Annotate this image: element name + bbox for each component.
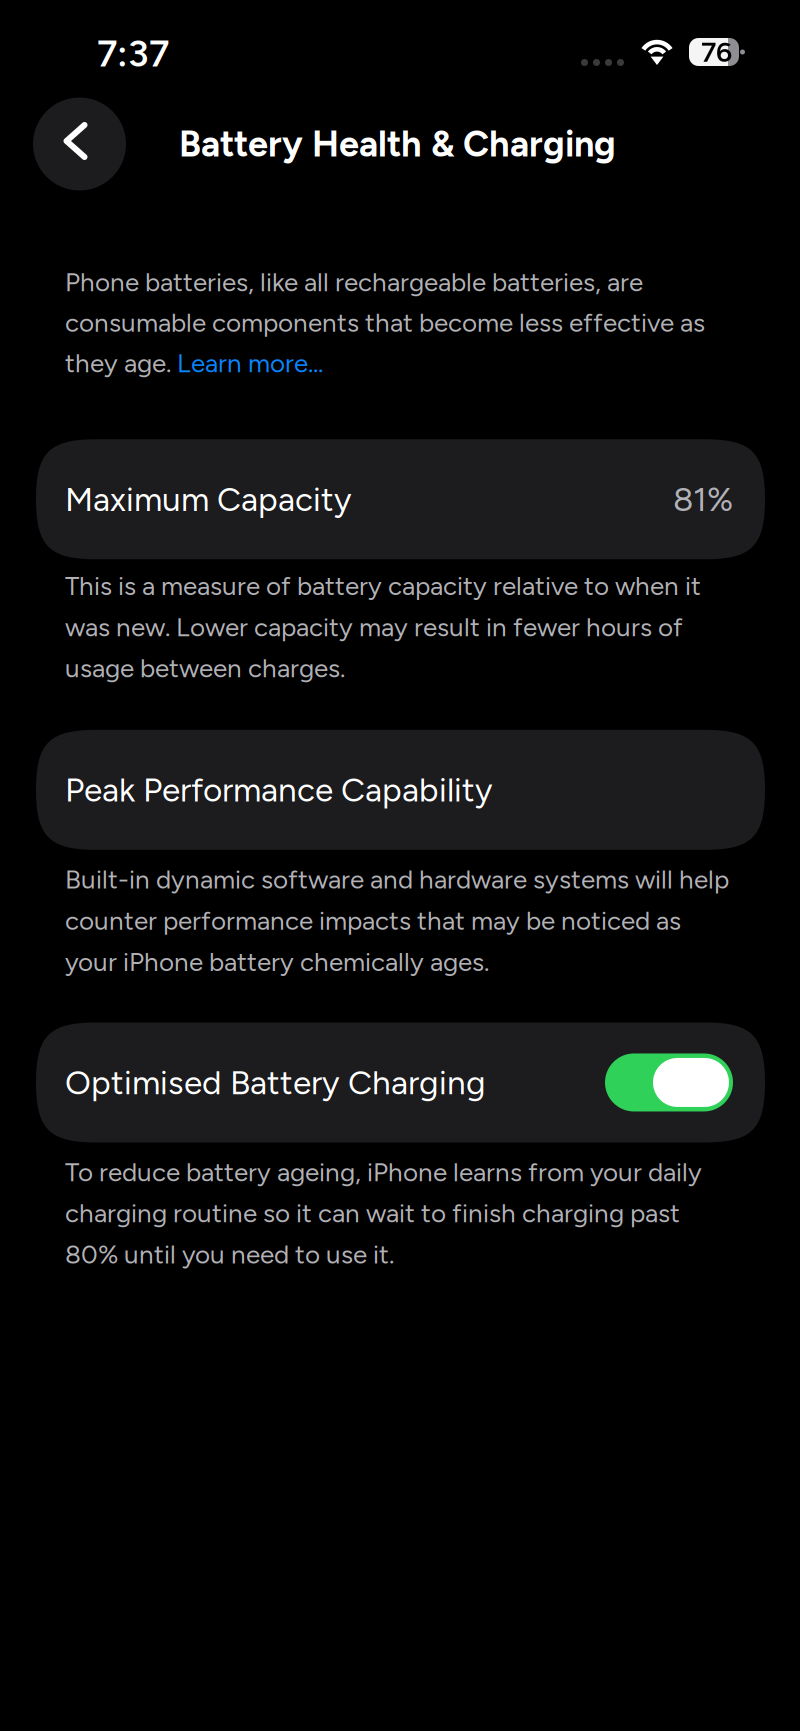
button[interactable]: Peak Performance Capability: [36, 730, 765, 850]
staticText: Phone batteries, like all rechargeable b…: [65, 267, 705, 378]
staticText: 76: [701, 35, 732, 69]
staticText: 7:37: [97, 31, 169, 76]
button[interactable]: Optimised Battery Charging: [36, 1022, 765, 1142]
staticText: Maximum Capacity: [65, 479, 352, 519]
staticText: Built-in dynamic software and hardware s…: [65, 864, 729, 977]
staticText: Battery Health & Charging: [179, 122, 616, 166]
staticText: To reduce battery ageing, iPhone learns …: [65, 1156, 702, 1270]
button[interactable]: Back: [33, 97, 126, 190]
staticText: 81%: [673, 479, 733, 519]
staticText: Peak Performance Capability: [65, 770, 493, 810]
staticText: Optimised Battery Charging: [65, 1062, 486, 1102]
button[interactable]: Maximum Capacity: [36, 439, 765, 559]
staticText: This is a measure of battery capacity re…: [65, 570, 701, 684]
